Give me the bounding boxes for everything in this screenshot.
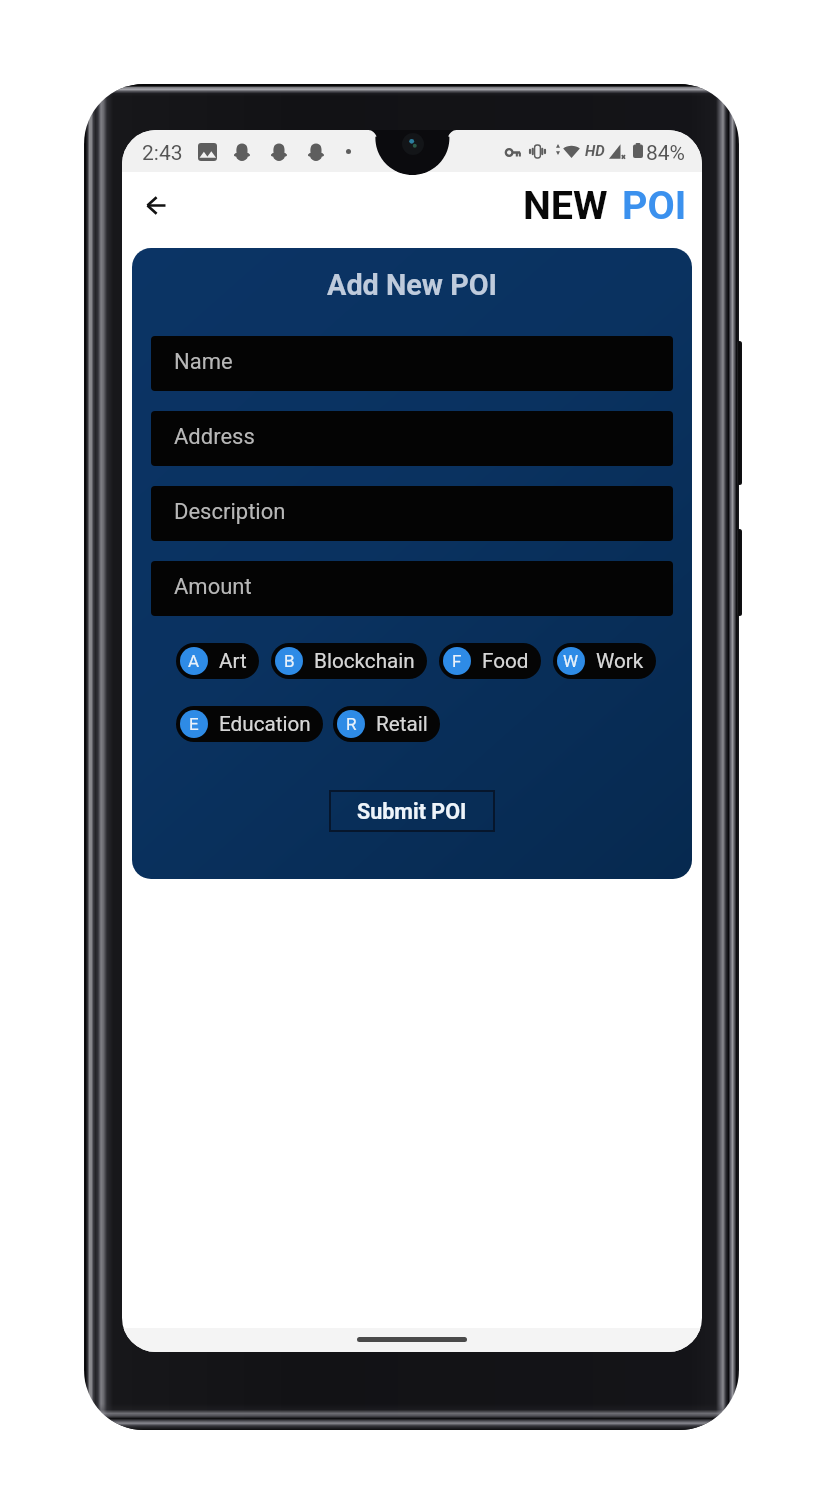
staticText: Description — [174, 499, 286, 525]
staticText: Education — [219, 712, 311, 736]
staticText: A — [188, 651, 200, 671]
button[interactable]: Address — [151, 411, 673, 466]
button[interactable]: E — [176, 706, 323, 742]
staticText: Name — [174, 349, 233, 375]
button[interactable]: Name — [151, 336, 673, 391]
staticText: Blockchain — [314, 649, 415, 673]
button[interactable]: NEW — [523, 182, 608, 228]
staticText: Amount — [174, 574, 252, 600]
button[interactable]: Amount — [151, 561, 673, 616]
staticText: Submit POI — [357, 799, 467, 824]
staticText: Food — [482, 649, 529, 673]
button[interactable]: B — [271, 643, 427, 679]
staticText: Retail — [376, 712, 428, 736]
staticText: E — [189, 714, 199, 734]
staticText: W — [563, 651, 579, 671]
button[interactable]: Add New POI — [327, 268, 497, 302]
staticText: Address — [174, 424, 255, 450]
staticText: B — [284, 651, 295, 671]
button[interactable]: W — [553, 643, 656, 679]
button[interactable]: Description — [151, 486, 673, 541]
staticText: R — [346, 714, 357, 734]
button[interactable]: Back — [132, 181, 180, 229]
button[interactable]: F — [439, 643, 541, 679]
staticText: Work — [596, 649, 644, 673]
staticText: F — [452, 651, 462, 671]
staticText: Art — [219, 649, 247, 673]
button[interactable]: R — [333, 706, 440, 742]
button[interactable]: POI — [622, 182, 687, 228]
staticText: HD — [585, 142, 605, 160]
staticText: 2:43 — [142, 141, 183, 166]
button[interactable]: Submit POI — [329, 790, 495, 832]
button[interactable]: A — [176, 643, 259, 679]
staticText: 84% — [646, 141, 685, 166]
